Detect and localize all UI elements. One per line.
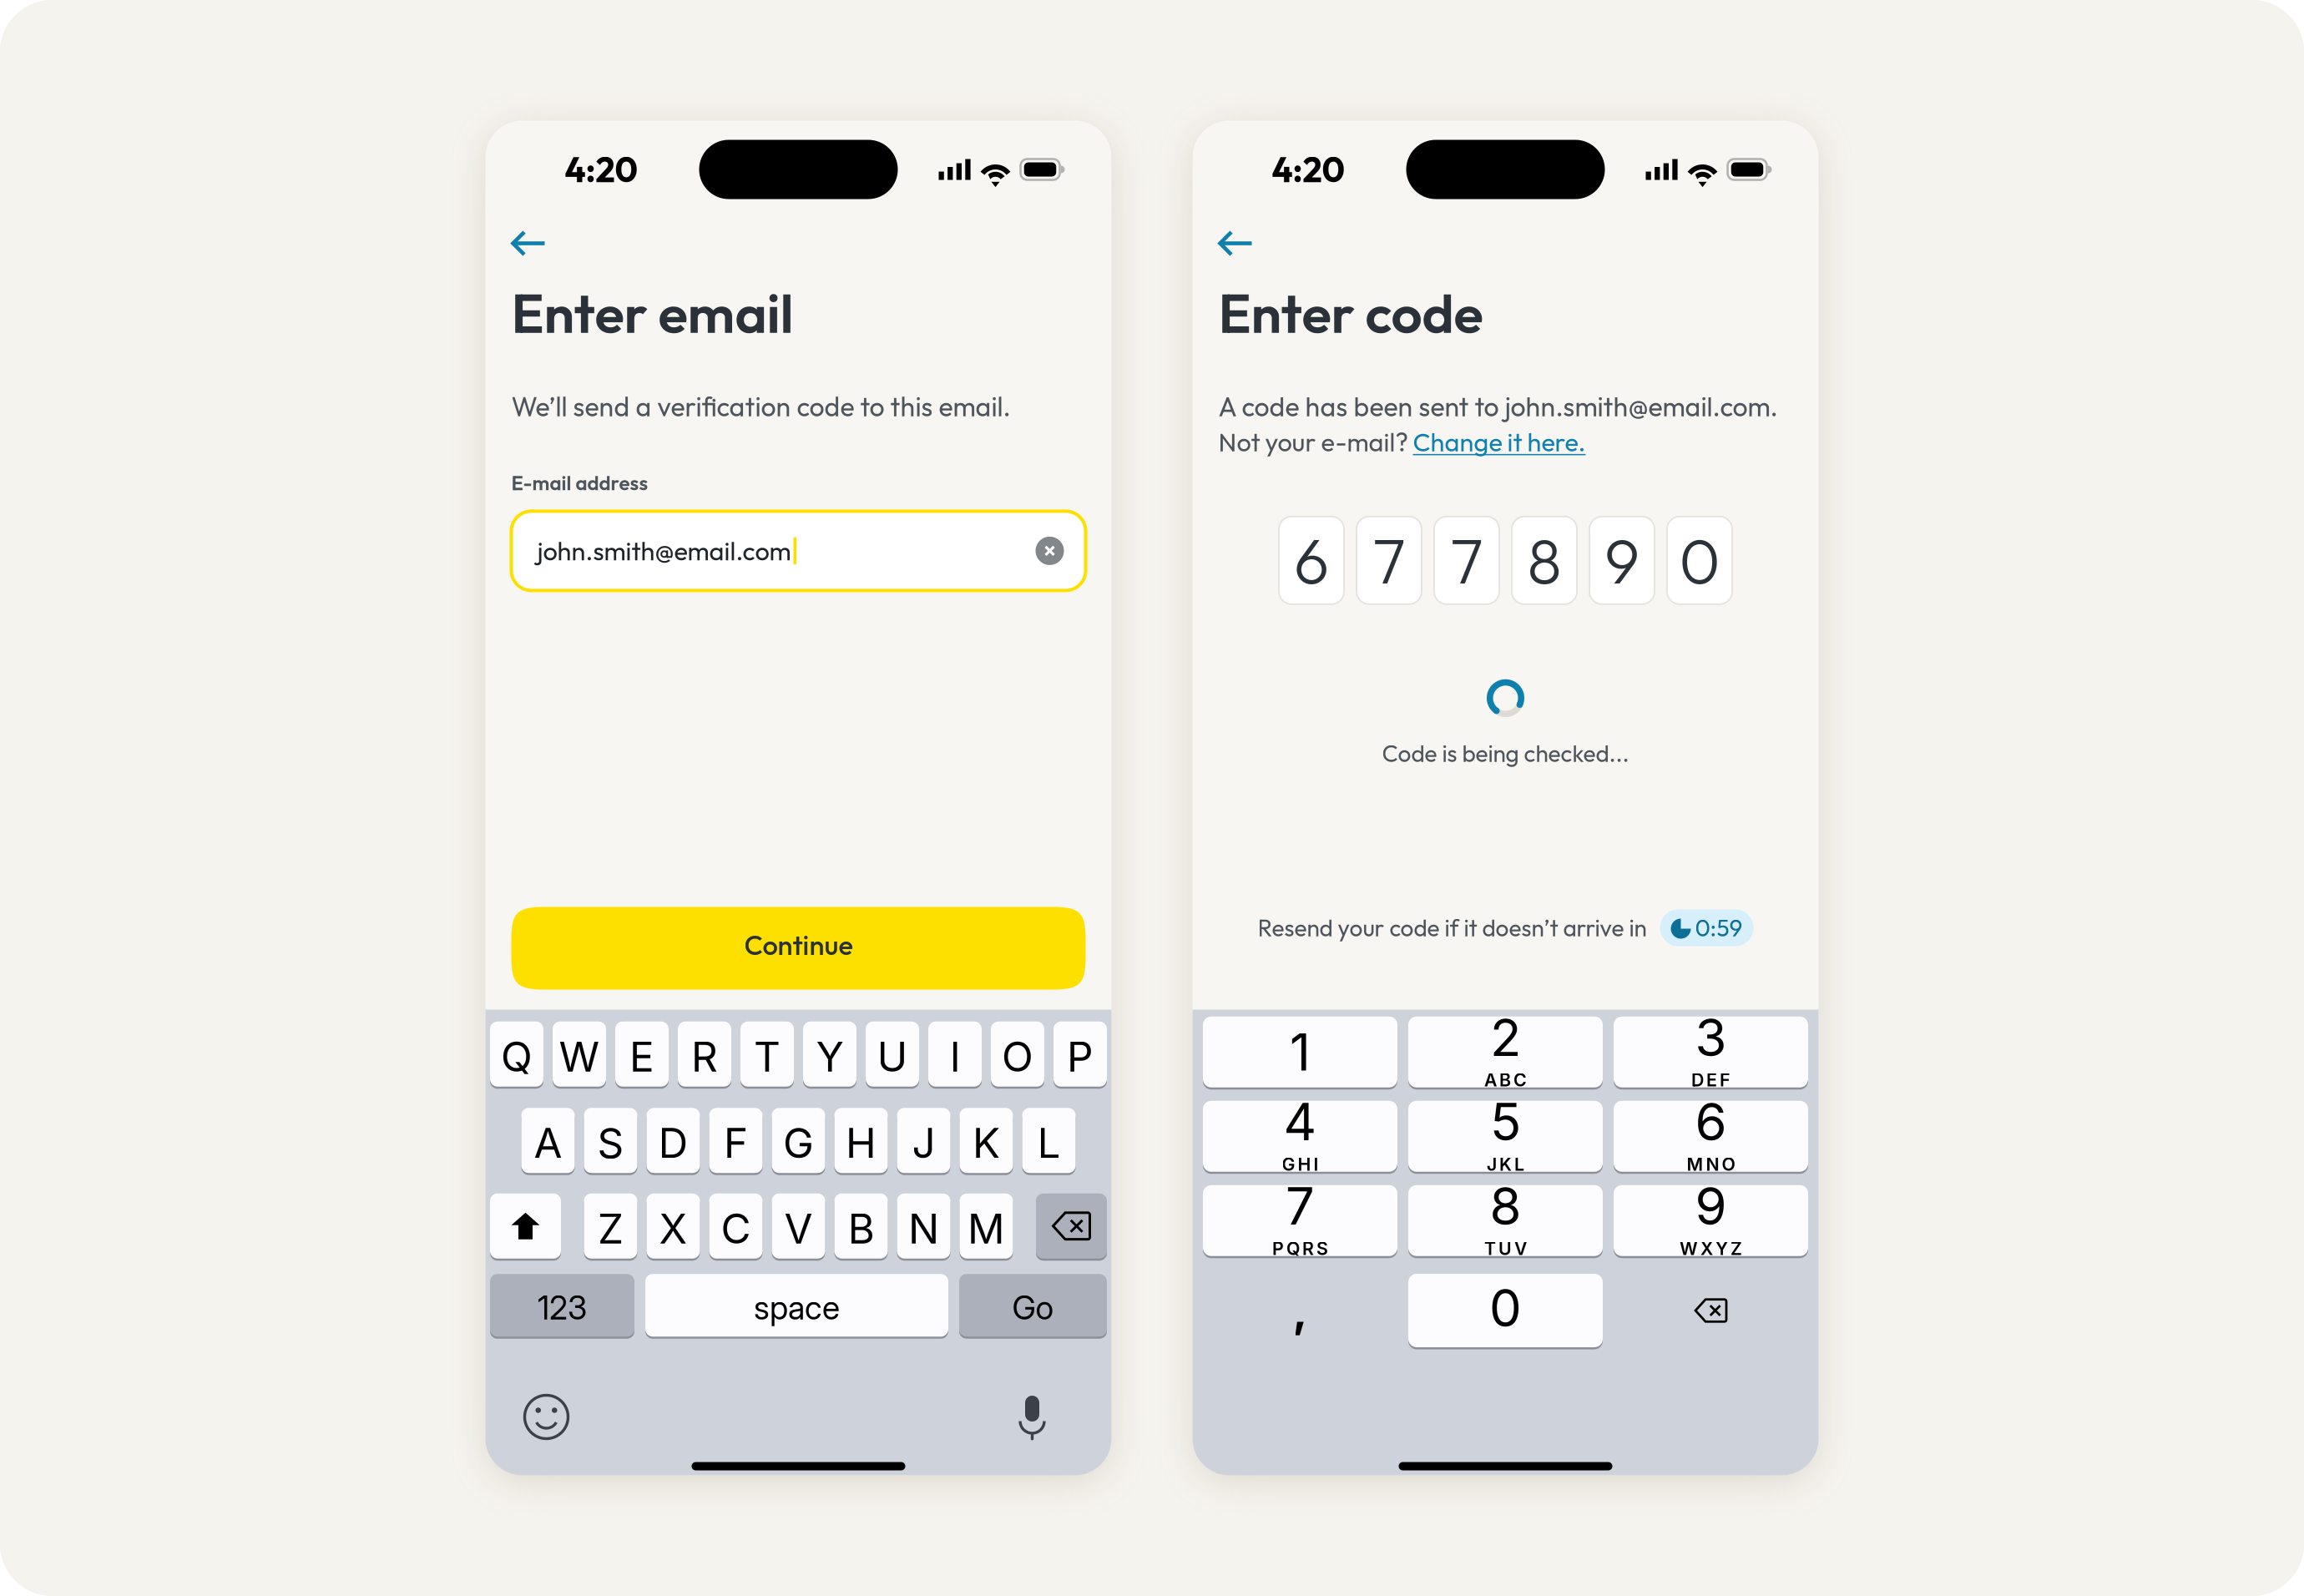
staticText: 6 [1695, 1091, 1727, 1153]
staticText: We’ll send a verification code to this e… [511, 390, 1011, 423]
staticText: 7 [1373, 521, 1405, 600]
staticText: 7 [1286, 1175, 1315, 1237]
staticText: Z [598, 1204, 624, 1253]
staticText: Q [501, 1032, 533, 1081]
button[interactable]: Y [803, 1020, 856, 1088]
staticText: Y [816, 1032, 844, 1081]
staticText: 1 [1290, 1021, 1311, 1083]
staticText: D E F [1691, 1069, 1731, 1091]
staticText: , [1293, 1284, 1308, 1337]
staticText: S [597, 1118, 624, 1168]
staticText: Enter email [511, 278, 793, 347]
staticText: P Q R S [1272, 1238, 1328, 1259]
button[interactable]: T [740, 1020, 794, 1088]
button[interactable]: J [897, 1107, 950, 1174]
button[interactable]: C [709, 1192, 763, 1260]
button[interactable]: R [678, 1020, 731, 1088]
staticText: W [559, 1032, 600, 1081]
button[interactable]: Q [490, 1020, 543, 1088]
button[interactable]: 9 [1614, 1184, 1808, 1257]
staticText: P [1067, 1032, 1094, 1081]
button[interactable]: 3 [1614, 1015, 1808, 1088]
button[interactable]: G [772, 1107, 825, 1174]
staticText: X [659, 1204, 687, 1253]
button[interactable]: H [834, 1107, 888, 1174]
staticText: 6 [1294, 521, 1329, 600]
staticText: A B C [1484, 1069, 1527, 1091]
button[interactable]: X [647, 1192, 700, 1260]
staticText: Resend your code if it doesn’t arrive in [1258, 913, 1647, 943]
button[interactable]: Back [511, 226, 555, 261]
button[interactable]: Emoji keyboard [523, 1394, 570, 1440]
staticText: L [1037, 1118, 1061, 1168]
staticText: 9 [1604, 521, 1640, 600]
button[interactable]: 5 [1408, 1100, 1603, 1173]
button[interactable]: Delete [1614, 1273, 1808, 1349]
button[interactable]: N [897, 1192, 950, 1260]
button[interactable]: P [1053, 1020, 1107, 1088]
button[interactable]: 0:59 [1660, 909, 1753, 946]
button[interactable]: 7 [1203, 1184, 1397, 1257]
button[interactable]: Dictate [1014, 1393, 1051, 1441]
button[interactable]: E [615, 1020, 669, 1088]
staticText: 0 [1489, 1277, 1522, 1339]
button[interactable]: space [645, 1273, 948, 1338]
staticText: Go [1012, 1288, 1054, 1327]
button[interactable]: V [772, 1192, 825, 1260]
staticText: I [950, 1032, 960, 1081]
staticText: F [724, 1118, 748, 1168]
button[interactable]: W [553, 1020, 606, 1088]
button[interactable]: Back [1218, 226, 1262, 261]
button[interactable]: 6 [1614, 1100, 1808, 1173]
button[interactable]: , [1203, 1273, 1397, 1349]
button[interactable]: D [647, 1107, 700, 1174]
button[interactable]: Delete [1036, 1192, 1107, 1260]
staticText: C [721, 1204, 751, 1253]
staticText: A [534, 1118, 562, 1168]
button[interactable]: Z [584, 1192, 637, 1260]
staticText: Code is being checked... [1382, 739, 1629, 768]
button[interactable]: S [584, 1107, 637, 1174]
staticText: J K L [1487, 1154, 1524, 1175]
staticText: O [1002, 1032, 1033, 1081]
staticText: 9 [1695, 1175, 1727, 1237]
staticText: V [784, 1204, 813, 1253]
staticText: M N O [1687, 1154, 1735, 1175]
button[interactable]: Shift [490, 1192, 561, 1260]
button[interactable]: O [991, 1020, 1044, 1088]
button[interactable]: 2 [1408, 1015, 1603, 1088]
staticText: 4 [1283, 1091, 1317, 1153]
button[interactable]: B [834, 1192, 888, 1260]
staticText: D [658, 1118, 688, 1168]
button[interactable]: Change it here. [1413, 426, 1586, 458]
staticText: 8 [1527, 521, 1561, 600]
staticText: E-mail address [511, 470, 648, 495]
button[interactable]: 0 [1408, 1273, 1603, 1349]
staticText: A code has been sent to john.smith@email… [1218, 390, 1778, 423]
staticText: M [968, 1204, 1005, 1253]
staticText: 0:59 [1695, 913, 1743, 943]
staticText: E [629, 1032, 654, 1081]
staticText: K [973, 1118, 1000, 1168]
button[interactable]: U [866, 1020, 919, 1088]
button[interactable]: 1 [1203, 1015, 1397, 1088]
staticText: 5 [1490, 1091, 1521, 1153]
button[interactable]: M [960, 1192, 1013, 1260]
button[interactable]: A [521, 1107, 575, 1174]
button[interactable]: F [709, 1107, 763, 1174]
button[interactable]: I [928, 1020, 982, 1088]
button[interactable]: K [960, 1107, 1013, 1174]
staticText: 3 [1695, 1006, 1727, 1068]
staticText: W X Y Z [1680, 1238, 1742, 1259]
button[interactable]: 4 [1203, 1100, 1397, 1173]
button[interactable]: 123 [490, 1273, 634, 1338]
staticText: 0 [1679, 521, 1720, 600]
staticText: H [846, 1118, 877, 1168]
button[interactable]: Go [959, 1273, 1107, 1338]
button[interactable]: 8 [1408, 1184, 1603, 1257]
staticText: Change it here. [1413, 426, 1586, 458]
staticText: 7 [1450, 521, 1483, 600]
button[interactable]: L [1022, 1107, 1076, 1174]
staticText: B [848, 1204, 874, 1253]
button[interactable]: Continue [511, 907, 1086, 990]
